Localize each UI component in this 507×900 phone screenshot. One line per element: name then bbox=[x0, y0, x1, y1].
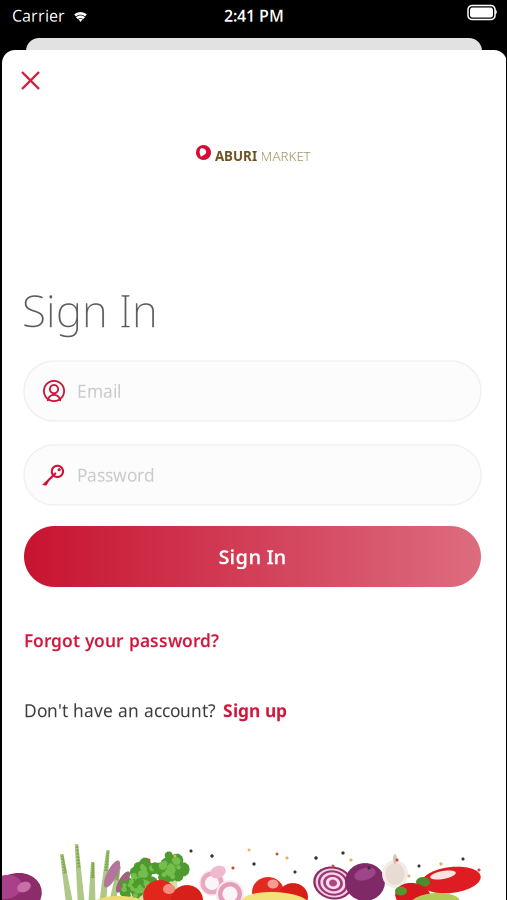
staticText: Password bbox=[77, 463, 155, 486]
button[interactable]: Sign up bbox=[223, 694, 287, 727]
staticText: Email bbox=[77, 379, 121, 402]
staticText: Forgot your password? bbox=[24, 629, 219, 652]
button[interactable]: Forgot your password? bbox=[22, 622, 221, 659]
button[interactable]: Sign In bbox=[24, 526, 481, 587]
staticText: Carrier bbox=[12, 5, 65, 26]
staticText: MARKET bbox=[260, 147, 310, 165]
staticText: Sign In bbox=[22, 281, 158, 339]
staticText: Sign In bbox=[218, 543, 286, 570]
button[interactable]: Close bbox=[9, 59, 53, 103]
staticText: Sign up bbox=[223, 699, 287, 722]
staticText: ABURI bbox=[215, 147, 257, 165]
staticText: Don't have an account? bbox=[24, 699, 216, 722]
staticText: 2:41 PM bbox=[224, 5, 284, 26]
staticText: . . . . . . . . . . . . . . bbox=[234, 158, 261, 164]
